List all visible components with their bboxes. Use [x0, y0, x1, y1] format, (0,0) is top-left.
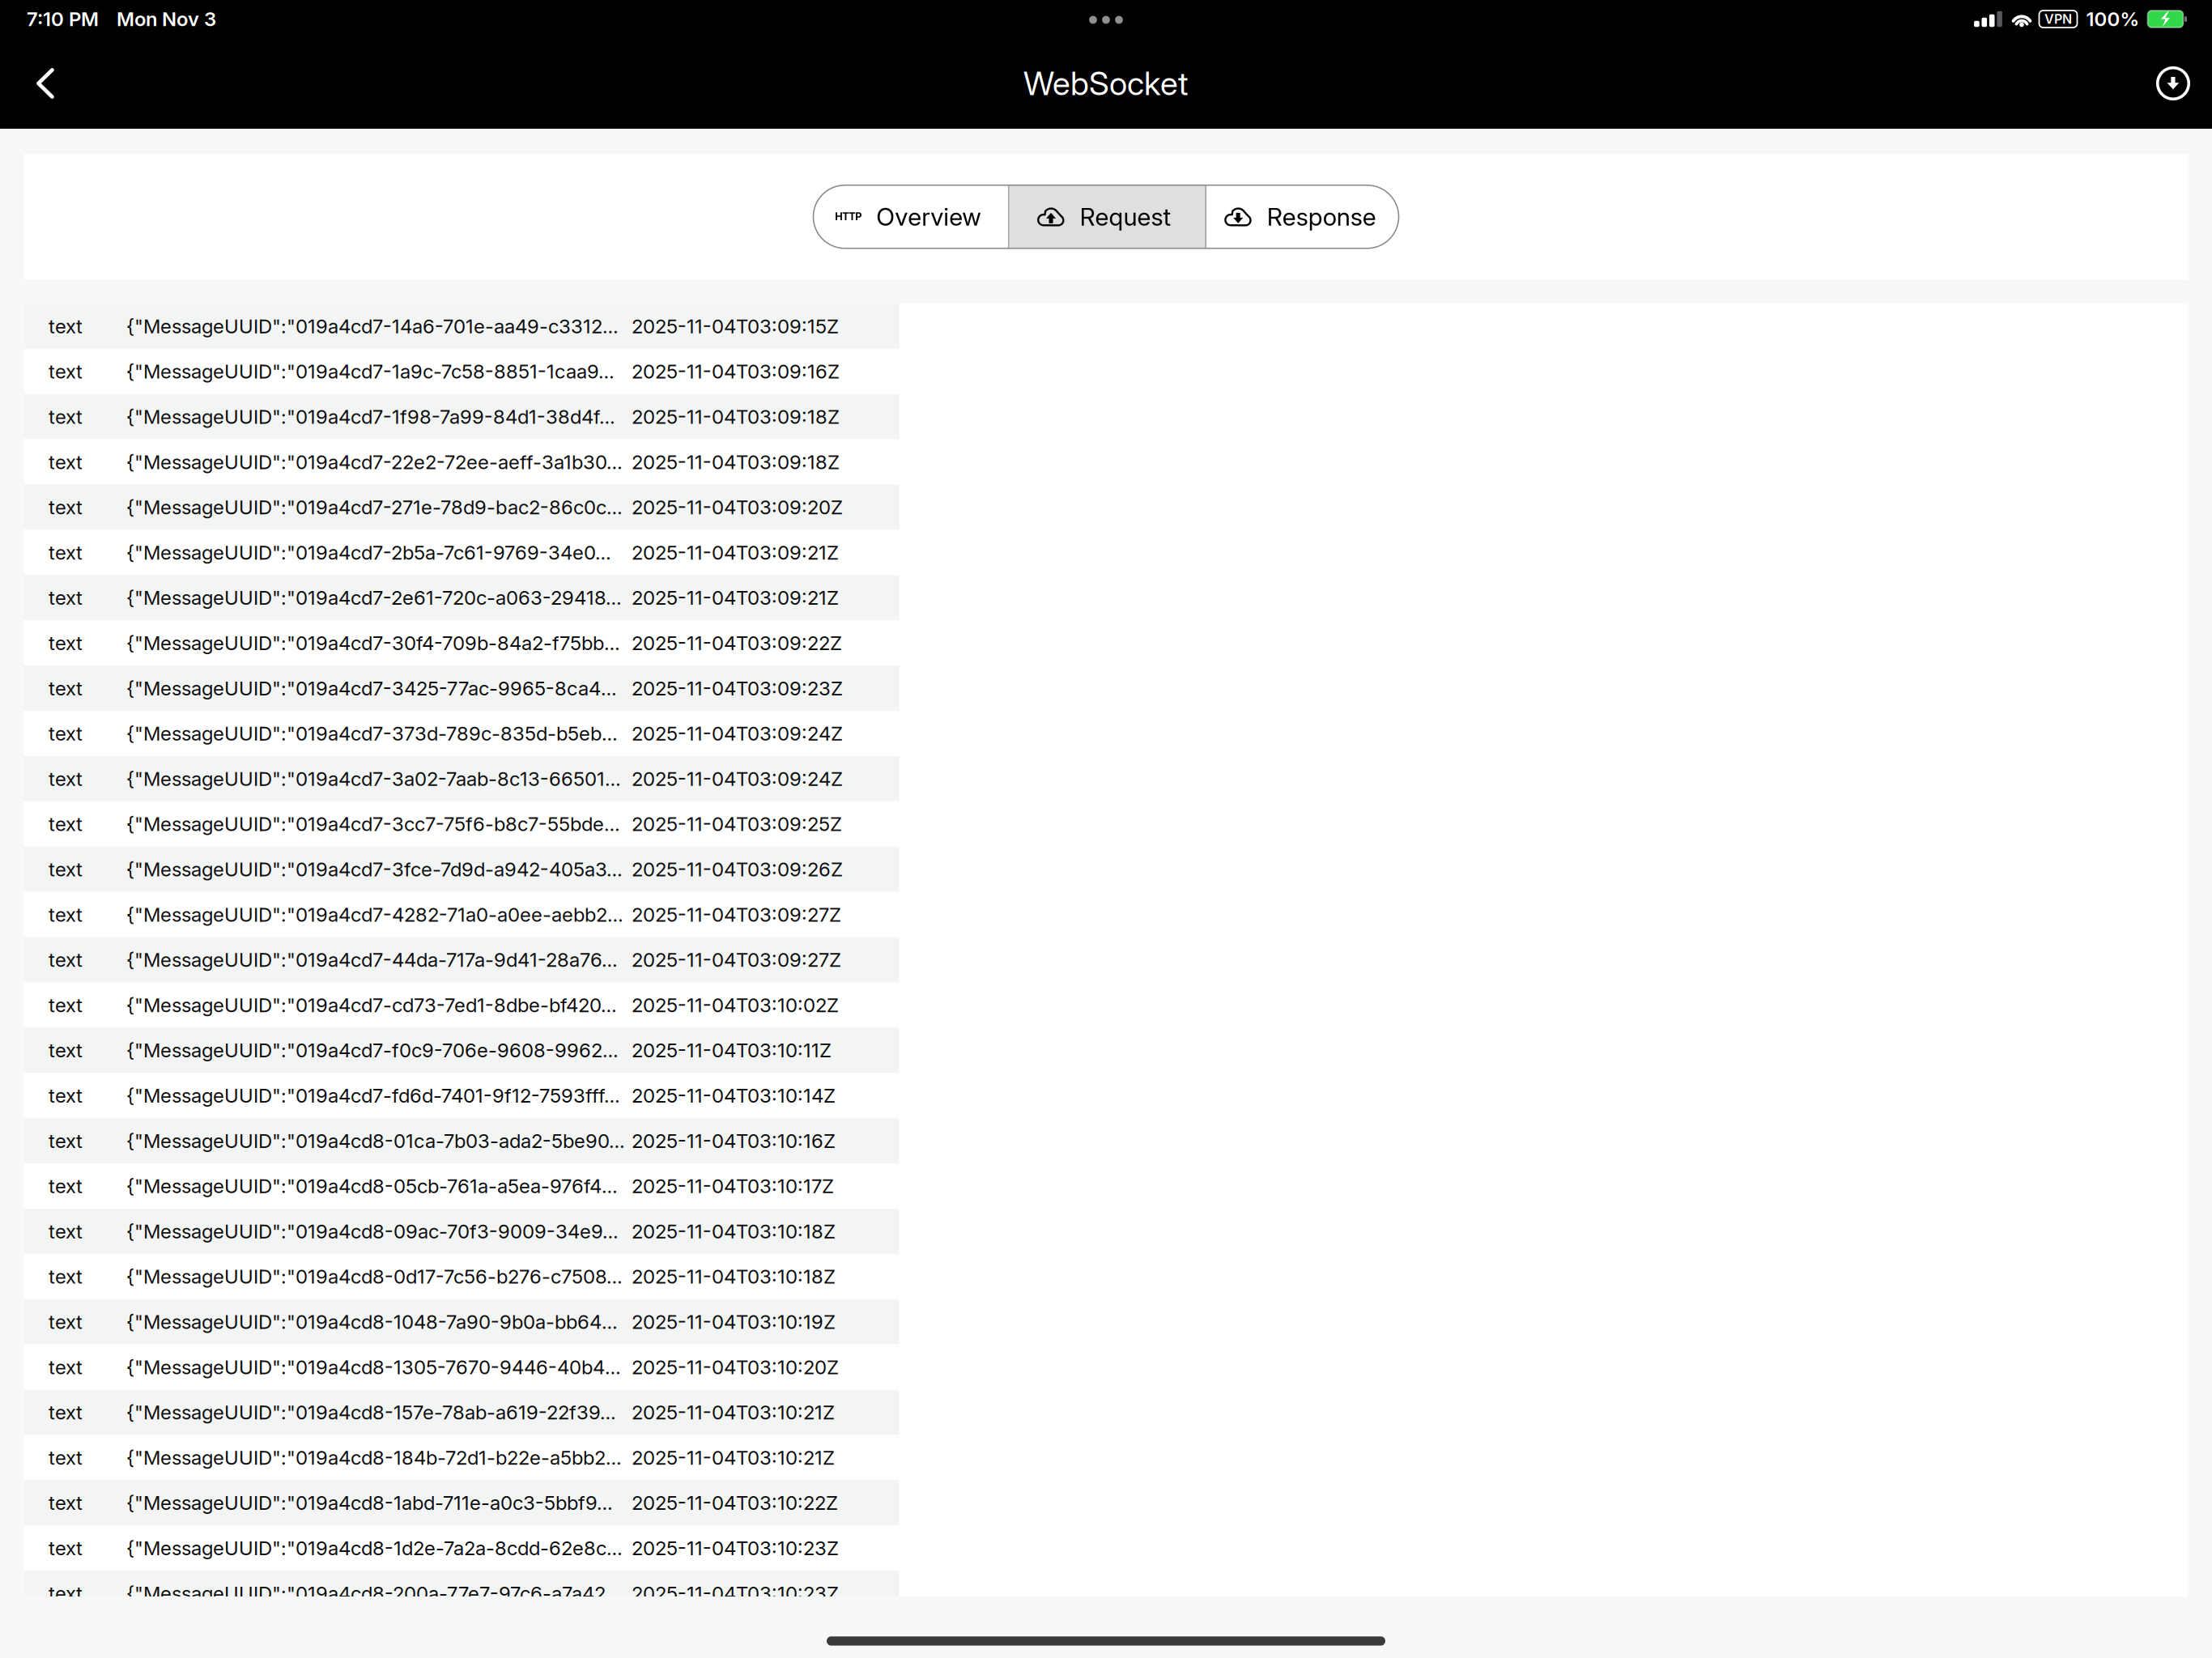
staticText: 2025-11-04T03:09:22Z: [632, 631, 842, 655]
staticText: {"MessageUUID":"019a4cd8-184b-72d1-b22e-…: [126, 1446, 622, 1469]
button[interactable]: text: [24, 1571, 899, 1616]
button[interactable]: Back: [23, 58, 68, 108]
staticText: {"MessageUUID":"019a4cd8-1d2e-7a2a-8cdd-…: [126, 1536, 623, 1560]
button[interactable]: text: [24, 575, 899, 620]
staticText: 100%: [2086, 7, 2140, 31]
staticText: text: [49, 1310, 83, 1334]
button[interactable]: text: [24, 937, 899, 982]
staticText: 2025-11-04T03:09:21Z: [632, 541, 839, 564]
staticText: 2025-11-04T03:09:18Z: [632, 450, 840, 474]
button[interactable]: text: [24, 1209, 899, 1254]
button[interactable]: text: [24, 892, 899, 937]
button[interactable]: text: [24, 1299, 899, 1344]
staticText: {"MessageUUID":"019a4cd8-200a-77e7-97c6-…: [126, 1582, 622, 1605]
button[interactable]: text: [24, 801, 899, 847]
staticText: 2025-11-04T03:10:16Z: [632, 1129, 836, 1153]
staticText: {"MessageUUID":"019a4cd8-09ac-70f3-9009-…: [126, 1220, 619, 1243]
staticText: 2025-11-04T03:09:23Z: [632, 676, 843, 700]
staticText: {"MessageUUID":"019a4cd8-0d17-7c56-b276-…: [126, 1265, 623, 1288]
button[interactable]: text: [24, 485, 899, 530]
staticText: text: [49, 586, 83, 609]
staticText: 2025-11-04T03:10:21Z: [632, 1446, 835, 1469]
staticText: 2025-11-04T03:09:16Z: [632, 360, 840, 383]
button[interactable]: text: [24, 349, 899, 394]
staticText: text: [49, 1355, 83, 1379]
button[interactable]: text: [24, 1118, 899, 1163]
button[interactable]: text: [24, 1435, 899, 1480]
button[interactable]: text: [24, 1344, 899, 1390]
staticText: 2025-11-04T03:09:27Z: [632, 903, 841, 926]
staticText: 2025-11-04T03:09:18Z: [632, 405, 840, 428]
staticText: 2025-11-04T03:10:21Z: [632, 1401, 835, 1424]
button[interactable]: text: [24, 394, 899, 439]
button[interactable]: HTTP: [813, 185, 1008, 248]
staticText: Request: [1080, 202, 1171, 231]
button[interactable]: text: [24, 711, 899, 756]
staticText: 2025-11-04T03:09:27Z: [632, 948, 841, 971]
staticText: 2025-11-04T03:10:02Z: [632, 993, 839, 1017]
staticText: {"MessageUUID":"019a4cd7-cd73-7ed1-8dbe-…: [126, 993, 617, 1017]
button[interactable]: text: [24, 666, 899, 711]
staticText: 2025-11-04T03:10:18Z: [632, 1220, 836, 1243]
staticText: text: [49, 1582, 83, 1605]
staticText: text: [49, 903, 83, 926]
staticText: {"MessageUUID":"019a4cd7-fd6d-7401-9f12-…: [126, 1084, 620, 1107]
staticText: VPN: [2044, 11, 2072, 27]
button[interactable]: text: [24, 304, 899, 349]
staticText: 2025-11-04T03:10:23Z: [632, 1536, 839, 1560]
staticText: 2025-11-04T03:09:20Z: [632, 495, 843, 519]
staticText: text: [49, 541, 83, 564]
staticText: text: [49, 450, 83, 474]
button[interactable]: text: [24, 1254, 899, 1299]
staticText: 7:10 PM: [27, 7, 99, 31]
button[interactable]: text: [24, 439, 899, 485]
button[interactable]: Request: [1009, 185, 1205, 248]
staticText: text: [49, 1039, 83, 1062]
staticText: {"MessageUUID":"019a4cd8-01ca-7b03-ada2-…: [126, 1129, 625, 1153]
button[interactable]: text: [24, 1480, 899, 1525]
button[interactable]: text: [24, 1028, 899, 1073]
staticText: {"MessageUUID":"019a4cd8-1048-7a90-9b0a-…: [126, 1310, 618, 1334]
staticText: text: [49, 1491, 83, 1515]
staticText: 2025-11-04T03:10:17Z: [632, 1174, 834, 1198]
staticText: 2025-11-04T03:10:19Z: [632, 1310, 836, 1334]
button[interactable]: text: [24, 756, 899, 801]
staticText: {"MessageUUID":"019a4cd7-22e2-72ee-aeff-…: [126, 450, 623, 474]
staticText: {"MessageUUID":"019a4cd7-3fce-7d9d-a942-…: [126, 857, 623, 881]
button[interactable]: Download: [2150, 58, 2196, 108]
staticText: text: [49, 631, 83, 655]
button[interactable]: text: [24, 1390, 899, 1435]
staticText: text: [49, 360, 83, 383]
staticText: 2025-11-04T03:09:24Z: [632, 722, 843, 745]
staticText: text: [49, 1129, 83, 1153]
staticText: 2025-11-04T03:09:24Z: [632, 767, 843, 790]
staticText: 2025-11-04T03:10:22Z: [632, 1491, 838, 1515]
button[interactable]: Response: [1206, 185, 1399, 248]
staticText: text: [49, 1536, 83, 1560]
staticText: text: [49, 1446, 83, 1469]
staticText: text: [49, 948, 83, 971]
staticText: text: [49, 1401, 83, 1424]
staticText: Mon Nov 3: [117, 7, 216, 31]
staticText: 2025-11-04T03:09:15Z: [632, 314, 839, 338]
button[interactable]: text: [24, 847, 899, 892]
button[interactable]: text: [24, 1073, 899, 1118]
staticText: text: [49, 767, 83, 790]
staticText: 2025-11-04T03:09:21Z: [632, 586, 839, 609]
button[interactable]: text: [24, 530, 899, 575]
staticText: text: [49, 993, 83, 1017]
staticText: text: [49, 1265, 83, 1288]
button[interactable]: text: [24, 1525, 899, 1571]
staticText: {"MessageUUID":"019a4cd8-157e-78ab-a619-…: [126, 1401, 616, 1424]
button[interactable]: text: [24, 982, 899, 1028]
staticText: text: [49, 1174, 83, 1198]
staticText: 2025-11-04T03:10:18Z: [632, 1265, 836, 1288]
staticText: text: [49, 1220, 83, 1243]
staticText: {"MessageUUID":"019a4cd7-1a9c-7c58-8851-…: [126, 360, 615, 383]
button[interactable]: text: [24, 620, 899, 666]
button[interactable]: text: [24, 1163, 899, 1209]
staticText: text: [49, 857, 83, 881]
staticText: {"MessageUUID":"019a4cd8-1305-7670-9446-…: [126, 1355, 621, 1379]
staticText: {"MessageUUID":"019a4cd7-2b5a-7c61-9769-…: [126, 541, 611, 564]
staticText: 2025-11-04T03:10:14Z: [632, 1084, 836, 1107]
